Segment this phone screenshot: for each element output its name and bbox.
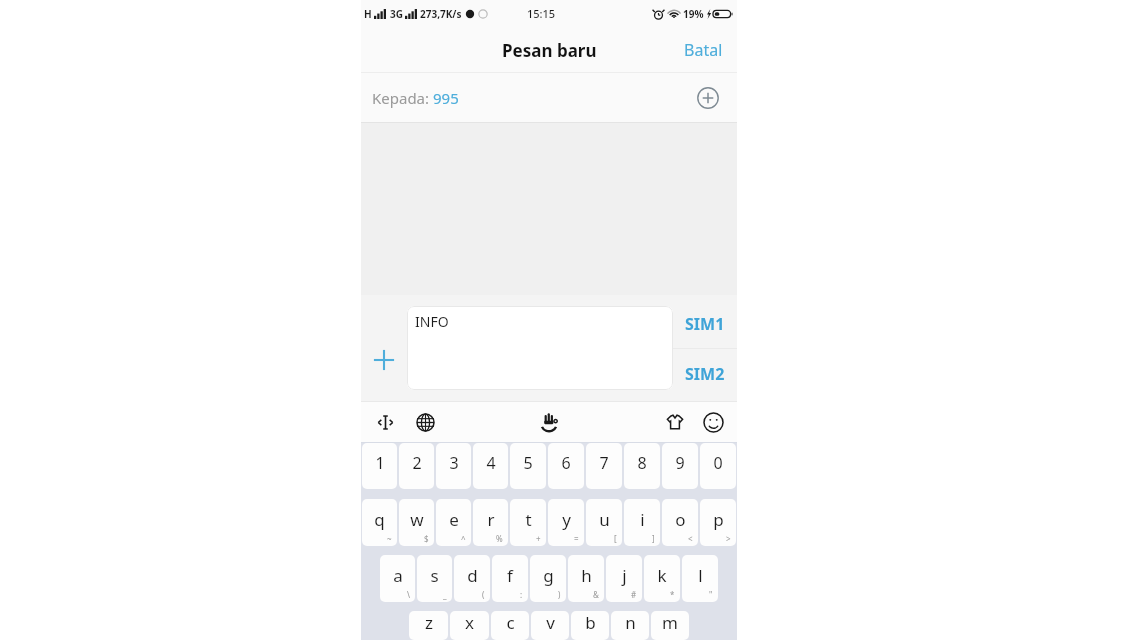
staticText: 3 [449, 452, 459, 474]
staticText: Kepada: [372, 88, 433, 108]
staticText: SIM1 [685, 313, 725, 335]
button[interactable]: f [492, 555, 528, 602]
button[interactable]: p [700, 499, 736, 546]
button[interactable]: 4 [473, 443, 508, 489]
button[interactable]: Theme [659, 406, 691, 438]
button[interactable]: Change language [409, 406, 441, 438]
staticText: e [449, 508, 459, 531]
button[interactable]: 0 [700, 443, 736, 489]
staticText: 19% [683, 7, 704, 21]
button[interactable]: h [568, 555, 604, 602]
button[interactable]: v [531, 611, 569, 640]
staticText: x [465, 611, 474, 634]
staticText: d [467, 564, 478, 587]
staticText: 0 [713, 452, 723, 474]
staticText: i [640, 508, 645, 531]
staticText: % [496, 533, 503, 544]
staticText: m [662, 611, 678, 634]
staticText: < [688, 533, 693, 544]
button[interactable]: o [662, 499, 698, 546]
staticText: 4 [486, 452, 496, 474]
button[interactable]: Add attachment [361, 295, 407, 401]
staticText: 5 [523, 452, 533, 474]
button[interactable]: w [399, 499, 434, 546]
staticText: " [709, 589, 713, 600]
button[interactable]: m [651, 611, 689, 640]
staticText: r [487, 508, 495, 531]
staticText: + [536, 533, 541, 544]
button[interactable]: Add recipient [693, 83, 723, 113]
button[interactable]: SIM2 [673, 349, 737, 398]
staticText: l [698, 564, 703, 587]
button[interactable]: e [436, 499, 471, 546]
button[interactable]: Handwriting [532, 405, 566, 439]
button[interactable]: 2 [399, 443, 434, 489]
button[interactable]: Batal [670, 29, 737, 71]
staticText: 9 [675, 452, 685, 474]
staticText: ^ [461, 533, 466, 544]
staticText: [ [614, 533, 617, 544]
button[interactable]: k [644, 555, 680, 602]
button[interactable]: 9 [662, 443, 698, 489]
staticText: s [430, 564, 439, 587]
button[interactable]: SIM1 [673, 299, 737, 348]
staticText: j [622, 564, 627, 587]
button[interactable]: n [611, 611, 649, 640]
staticText: ~ [387, 533, 392, 544]
staticText: $ [424, 533, 429, 544]
button[interactable]: s [417, 555, 452, 602]
staticText: u [599, 508, 610, 531]
button[interactable]: b [571, 611, 609, 640]
button[interactable]: a [380, 555, 415, 602]
button[interactable]: 3 [436, 443, 471, 489]
staticText: k [657, 564, 667, 587]
staticText: z [425, 611, 433, 634]
button[interactable]: 8 [624, 443, 660, 489]
button[interactable]: Emoji [697, 406, 729, 438]
button[interactable]: q [362, 499, 397, 546]
button[interactable]: INFO [407, 306, 673, 390]
button[interactable]: g [530, 555, 566, 602]
staticText: \ [407, 589, 410, 600]
staticText: 1 [375, 452, 385, 474]
button[interactable]: z [409, 611, 448, 640]
staticText: ( [482, 589, 485, 600]
staticText: q [374, 508, 385, 531]
staticText: * [670, 589, 675, 600]
button[interactable]: i [624, 499, 660, 546]
button[interactable]: Move cursor [369, 406, 401, 438]
staticText: 15:15 [527, 6, 556, 21]
button[interactable]: u [586, 499, 622, 546]
staticText: 7 [599, 452, 609, 474]
staticText: : [520, 589, 523, 600]
button[interactable]: r [473, 499, 508, 546]
button[interactable]: j [606, 555, 642, 602]
staticText: w [410, 508, 424, 531]
staticText: 8 [637, 452, 647, 474]
staticText: c [506, 611, 515, 634]
button[interactable]: t [510, 499, 546, 546]
staticText: Pesan baru [502, 39, 597, 62]
staticText: p [713, 508, 724, 531]
button[interactable]: l [682, 555, 718, 602]
button[interactable]: d [454, 555, 490, 602]
button[interactable]: y [548, 499, 584, 546]
staticText: ) [558, 589, 561, 600]
button[interactable]: c [491, 611, 529, 640]
staticText: & [593, 589, 599, 600]
button[interactable]: 6 [548, 443, 584, 489]
staticText: n [625, 611, 636, 634]
staticText: b [585, 611, 596, 634]
button[interactable]: 1 [362, 443, 397, 489]
staticText: o [675, 508, 686, 531]
staticText: v [546, 611, 555, 634]
button[interactable]: x [450, 611, 489, 640]
button[interactable]: 5 [510, 443, 546, 489]
staticText: ] [652, 533, 655, 544]
button[interactable]: 7 [586, 443, 622, 489]
staticText: h [581, 564, 592, 587]
staticText: = [574, 533, 579, 544]
staticText: g [543, 564, 554, 587]
staticText: H [364, 7, 372, 21]
staticText: Batal [684, 39, 723, 61]
